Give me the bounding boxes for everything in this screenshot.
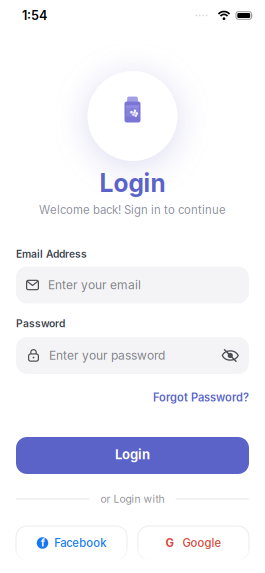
button[interactable]: Login — [0, 437, 265, 474]
button[interactable]: Forgot Password? — [153, 391, 249, 403]
button[interactable]: Enter your password — [0, 337, 265, 374]
button[interactable]: Show password — [221, 348, 239, 362]
staticText: Login — [115, 447, 150, 462]
staticText: 1:54 — [22, 8, 47, 23]
staticText: Welcome back! Sign in to continue — [39, 203, 226, 217]
staticText: or Login with — [100, 493, 164, 505]
staticText: G — [165, 536, 174, 550]
button[interactable]: G — [138, 526, 249, 560]
button[interactable]: f — [16, 526, 127, 560]
staticText: Password — [16, 317, 65, 329]
staticText: Google — [182, 536, 221, 550]
staticText: Forgot Password? — [153, 391, 249, 404]
staticText: Login — [99, 168, 165, 197]
staticText: Facebook — [54, 536, 106, 550]
staticText: Email Address — [16, 248, 87, 260]
button[interactable]: Enter your email — [0, 266, 265, 303]
staticText: f — [41, 536, 45, 549]
staticText: Enter your email — [48, 278, 141, 292]
staticText: Enter your password — [49, 348, 165, 363]
